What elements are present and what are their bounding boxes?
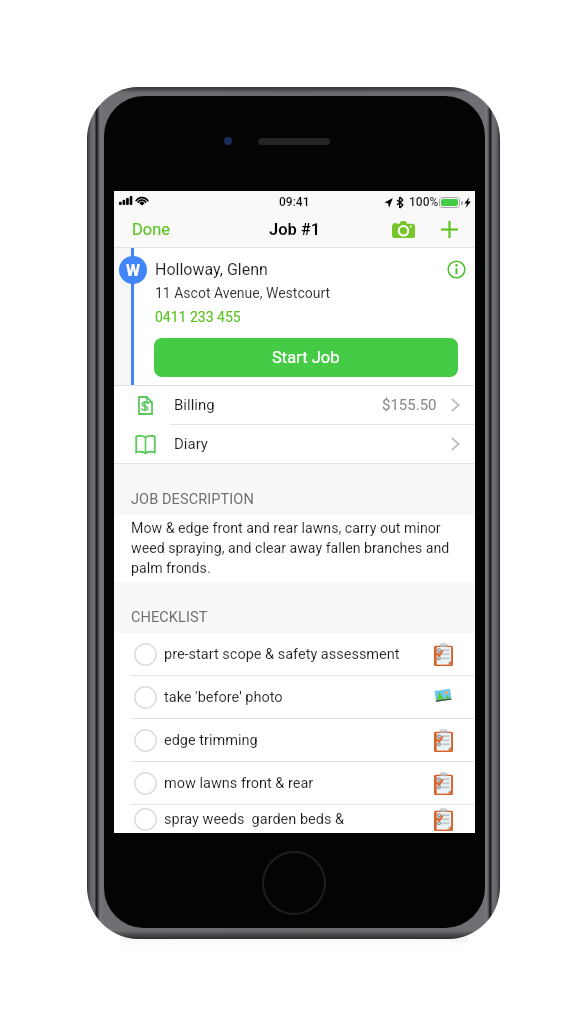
button[interactable]: spray weeds garden beds &: [114, 805, 475, 833]
staticText: take 'before' photo: [164, 689, 283, 706]
button[interactable]: pre-start scope & safety assessment: [114, 633, 475, 675]
staticText: W: [126, 261, 140, 280]
button[interactable]: Take photo: [386, 213, 421, 246]
staticText: edge trimming: [164, 732, 258, 749]
staticText: 11 Ascot Avenue, Westcourt: [155, 285, 331, 301]
button[interactable]: Billing: [114, 386, 475, 424]
button[interactable]: edge trimming: [114, 719, 475, 761]
staticText: 100%: [409, 195, 439, 209]
staticText: Start Job: [272, 348, 340, 367]
staticText: 09:41: [279, 195, 310, 209]
staticText: Job #1: [269, 220, 321, 239]
staticText: JOB DESCRIPTION: [131, 491, 254, 508]
button[interactable]: take 'before' photo: [114, 676, 475, 718]
button[interactable]: mow lawns front & rear: [114, 762, 475, 804]
staticText: CHECKLIST: [131, 609, 208, 626]
staticText: Billing: [174, 396, 215, 414]
staticText: Diary: [174, 435, 208, 453]
button[interactable]: 0411 233 455: [155, 309, 241, 325]
staticText: spray weeds garden beds &: [164, 811, 345, 828]
button[interactable]: Information: [446, 259, 466, 279]
button[interactable]: Add: [435, 213, 464, 246]
staticText: $155.50: [382, 396, 437, 414]
button[interactable]: Diary: [114, 425, 475, 463]
staticText: Holloway, Glenn: [155, 260, 268, 279]
staticText: Mow & edge front and rear lawns, carry o…: [131, 520, 462, 576]
staticText: pre-start scope & safety assessment: [164, 646, 400, 663]
staticText: Done: [132, 220, 171, 239]
staticText: mow lawns front & rear: [164, 775, 314, 792]
button[interactable]: Done: [114, 213, 185, 246]
button[interactable]: Start Job: [154, 338, 458, 377]
